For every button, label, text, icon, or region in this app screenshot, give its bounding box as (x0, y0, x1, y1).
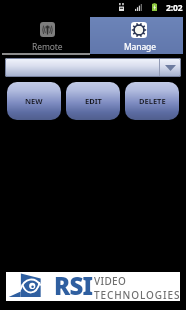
staticText: TECHNOLOGIES (94, 288, 181, 302)
staticText: NEW (25, 96, 43, 106)
button[interactable]: RSI (6, 272, 180, 301)
button[interactable]: EDIT (66, 82, 120, 120)
staticText: EDIT (85, 96, 102, 106)
staticText: Remote (32, 41, 63, 53)
staticText: VIDEO (94, 274, 127, 288)
staticText: DELETE (139, 96, 166, 106)
other: Remote (40, 22, 55, 37)
button[interactable]: NEW (7, 82, 61, 120)
staticText: 2:02 (166, 2, 183, 14)
button[interactable]: Manage (90, 17, 183, 54)
other: Expand (165, 65, 176, 71)
button[interactable]: Remote (0, 17, 90, 54)
staticText: RSI (54, 269, 93, 298)
button[interactable]: DELETE (125, 82, 179, 120)
button[interactable]: Expand (5, 58, 181, 77)
staticText: Manage (124, 41, 156, 53)
other: Manage (131, 22, 147, 38)
